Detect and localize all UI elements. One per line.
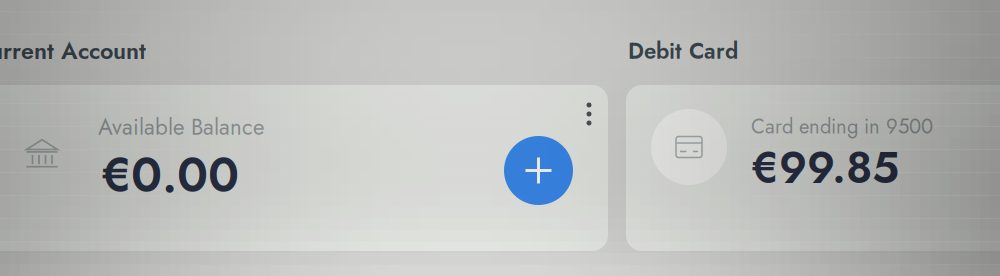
staticText: €99.85 [751, 136, 899, 199]
button[interactable]: Add [504, 136, 573, 205]
staticText: Debit Card [628, 35, 738, 67]
staticText: Card ending in 9500 [751, 112, 933, 141]
staticText: Available Balance [98, 111, 264, 143]
staticText: €0.00 [101, 140, 239, 210]
button[interactable]: More options [574, 97, 604, 131]
staticText: Current Account [0, 34, 146, 68]
